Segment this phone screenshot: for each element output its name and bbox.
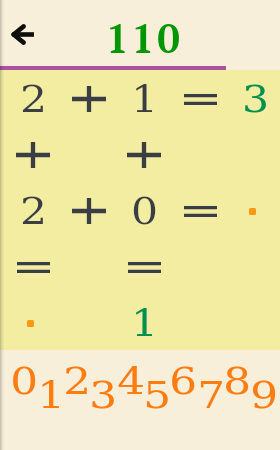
button[interactable] [61,183,117,239]
button[interactable]: 1 [35,373,67,417]
button[interactable] [5,239,61,295]
button[interactable]: 3 [227,71,280,127]
staticText: 0 [10,359,39,403]
button[interactable]: 3 [87,373,119,417]
button[interactable]: 7 [195,373,227,417]
button[interactable] [61,71,117,127]
staticText: 1 [130,77,158,121]
staticText: 6 [169,359,198,403]
staticText: 8 [223,359,252,403]
button[interactable] [172,183,228,239]
staticText: 5 [143,373,172,417]
button[interactable] [116,239,172,295]
button[interactable]: 6 [167,359,199,403]
staticText: 7 [197,373,226,417]
button[interactable]: 8 [221,359,253,403]
staticText: 1 [37,373,66,417]
staticText: 9 [250,373,279,417]
staticText: 1 [130,301,158,345]
button[interactable]: 5 [141,373,173,417]
staticText: 2 [19,77,47,121]
button[interactable] [116,127,172,183]
staticText: 4 [117,359,146,403]
button[interactable]: 1 [116,71,172,127]
button[interactable] [227,183,280,239]
button[interactable]: 1 [116,295,172,351]
button[interactable]: 2 [61,359,93,403]
button[interactable]: 4 [115,359,147,403]
staticText: 3 [89,373,118,417]
button[interactable]: Back [0,7,44,61]
staticText: 0 [130,189,158,233]
staticText: 2 [19,189,47,233]
button[interactable] [172,71,228,127]
button[interactable]: 2 [5,71,61,127]
staticText: 110 [106,11,183,64]
staticText: 3 [241,77,269,121]
button[interactable] [5,295,61,351]
button[interactable]: 2 [5,183,61,239]
button[interactable]: 0 [116,183,172,239]
button[interactable]: 9 [248,373,280,417]
button[interactable]: 0 [8,359,40,403]
staticText: 2 [63,359,92,403]
button[interactable] [5,127,61,183]
